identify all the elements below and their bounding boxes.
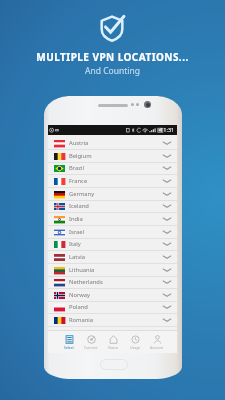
- staticText: India: [69, 215, 83, 223]
- staticText: Romania: [69, 316, 94, 324]
- staticText: MULTIPLE VPN LOCATIONS...: [0, 50, 225, 64]
- button[interactable]: France: [48, 175, 177, 188]
- button[interactable]: Iceland: [48, 200, 177, 213]
- staticText: Connect: [84, 345, 98, 350]
- staticText: Latvia: [69, 253, 86, 261]
- button[interactable]: Usage: [124, 335, 146, 350]
- button[interactable]: Connect: [80, 335, 102, 350]
- staticText: Netherlands: [69, 278, 103, 286]
- staticText: Account: [150, 345, 164, 350]
- staticText: Select: [64, 345, 74, 350]
- button[interactable]: Lithuania: [48, 264, 177, 277]
- button[interactable]: Germany: [48, 188, 177, 201]
- staticText: Status: [108, 345, 119, 350]
- button[interactable]: Netherlands: [48, 276, 177, 289]
- staticText: France: [69, 177, 88, 185]
- staticText: Norway: [69, 291, 91, 299]
- button[interactable]: Austria: [48, 137, 177, 150]
- button[interactable]: Latvia: [48, 251, 177, 264]
- staticText: 11:31: [160, 126, 175, 134]
- button[interactable]: Select: [58, 335, 80, 350]
- staticText: Israel: [69, 228, 85, 236]
- staticText: Austria: [69, 139, 89, 147]
- staticText: Brazil: [69, 164, 85, 172]
- button[interactable]: Status: [102, 335, 124, 350]
- staticText: Lithuania: [69, 266, 95, 274]
- button[interactable]: Israel: [48, 226, 177, 239]
- staticText: And Counting: [0, 65, 225, 77]
- staticText: Iceland: [69, 202, 89, 210]
- button[interactable]: Brazil: [48, 162, 177, 175]
- button[interactable]: Italy: [48, 238, 177, 251]
- staticText: Usage: [130, 345, 141, 350]
- button[interactable]: Poland: [48, 301, 177, 314]
- staticText: Poland: [69, 303, 88, 311]
- button[interactable]: India: [48, 213, 177, 226]
- button[interactable]: Belgium: [48, 150, 177, 163]
- button[interactable]: Romania: [48, 314, 177, 327]
- staticText: Italy: [69, 240, 81, 248]
- staticText: Belgium: [69, 152, 92, 160]
- button[interactable]: Norway: [48, 289, 177, 302]
- button[interactable]: Account: [146, 335, 168, 350]
- staticText: Germany: [69, 190, 95, 198]
- other: Secure VPN shield: [100, 15, 124, 41]
